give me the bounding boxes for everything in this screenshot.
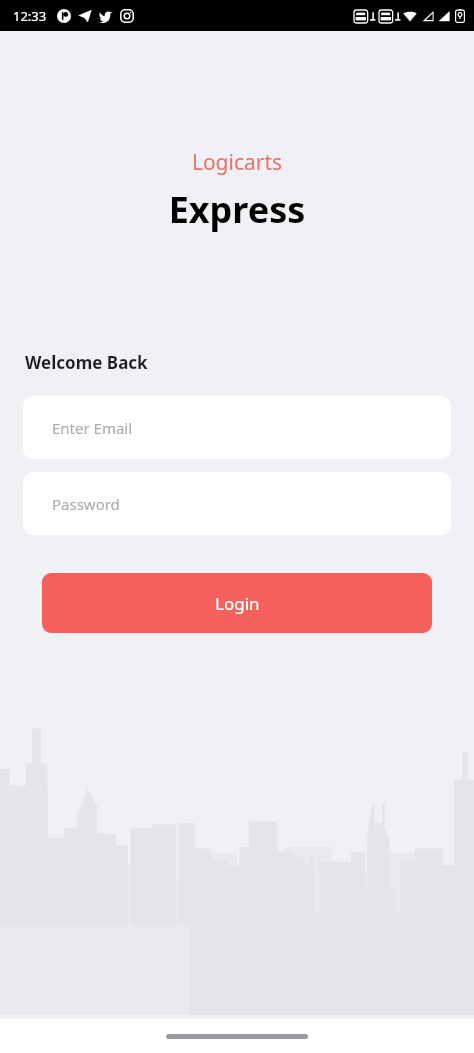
- staticText: Welcome Back: [25, 351, 148, 374]
- staticText: Login: [215, 592, 260, 615]
- staticText: Express: [0, 185, 474, 234]
- staticText: Enter Email: [52, 418, 133, 438]
- staticText: Logicarts: [0, 148, 474, 177]
- staticText: Password: [52, 494, 120, 514]
- staticText: 12:33: [13, 7, 47, 25]
- button[interactable]: Login: [42, 573, 432, 633]
- button[interactable]: Password: [23, 472, 451, 535]
- button[interactable]: Enter Email: [23, 396, 451, 459]
